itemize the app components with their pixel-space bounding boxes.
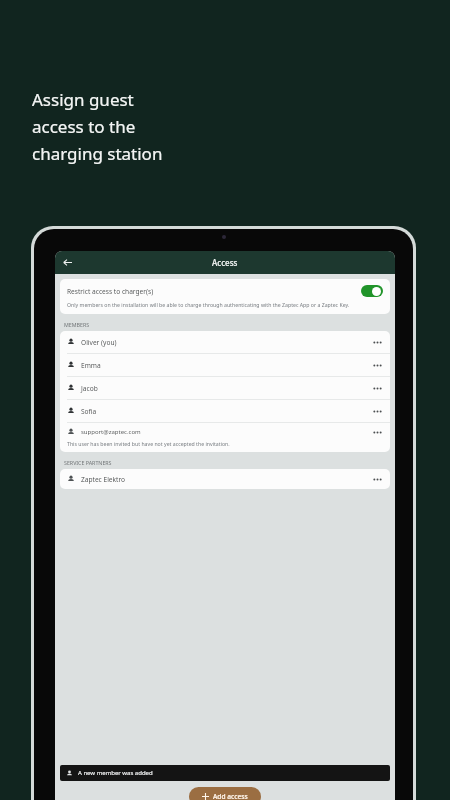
staticText: Jacob xyxy=(81,384,98,393)
staticText: A new member was added xyxy=(78,769,153,777)
button[interactable]: More options xyxy=(371,382,383,394)
staticText: Access xyxy=(212,257,238,268)
staticText: Sofia xyxy=(81,407,97,416)
button[interactable]: Back xyxy=(59,254,76,271)
staticText: support@zaptec.com xyxy=(81,428,141,436)
button[interactable]: More options xyxy=(371,359,383,371)
staticText: Assign guest xyxy=(32,88,134,111)
button[interactable]: Jacob xyxy=(60,377,390,399)
button[interactable]: Sofia xyxy=(60,400,390,422)
button[interactable]: Zaptec Elektro xyxy=(60,469,390,489)
button[interactable]: More options xyxy=(371,426,383,438)
button[interactable]: More options xyxy=(371,405,383,417)
staticText: charging station xyxy=(32,142,163,165)
staticText: access to the xyxy=(32,115,136,138)
button[interactable]: A new member was added xyxy=(60,765,390,781)
button[interactable]: Restrict access toggle xyxy=(361,285,383,297)
staticText: Add access xyxy=(213,792,248,800)
staticText: Zaptec Elektro xyxy=(81,475,126,484)
staticText: Only members on the installation will be… xyxy=(67,301,350,308)
button[interactable]: Add access xyxy=(189,787,261,800)
staticText: Restrict access to charger(s) xyxy=(67,287,154,296)
button[interactable]: support@zaptec.com xyxy=(60,423,390,452)
staticText: Emma xyxy=(81,361,101,370)
button[interactable]: More options xyxy=(371,473,383,485)
button[interactable]: Emma xyxy=(60,354,390,376)
button[interactable]: Oliver (you) xyxy=(60,331,390,353)
staticText: This user has been invited but have not … xyxy=(67,440,230,447)
button[interactable]: More options xyxy=(371,336,383,348)
staticText: Oliver (you) xyxy=(81,338,117,347)
staticText: MEMBERS xyxy=(64,321,90,328)
staticText: SERVICE PARTNERS xyxy=(64,459,112,466)
